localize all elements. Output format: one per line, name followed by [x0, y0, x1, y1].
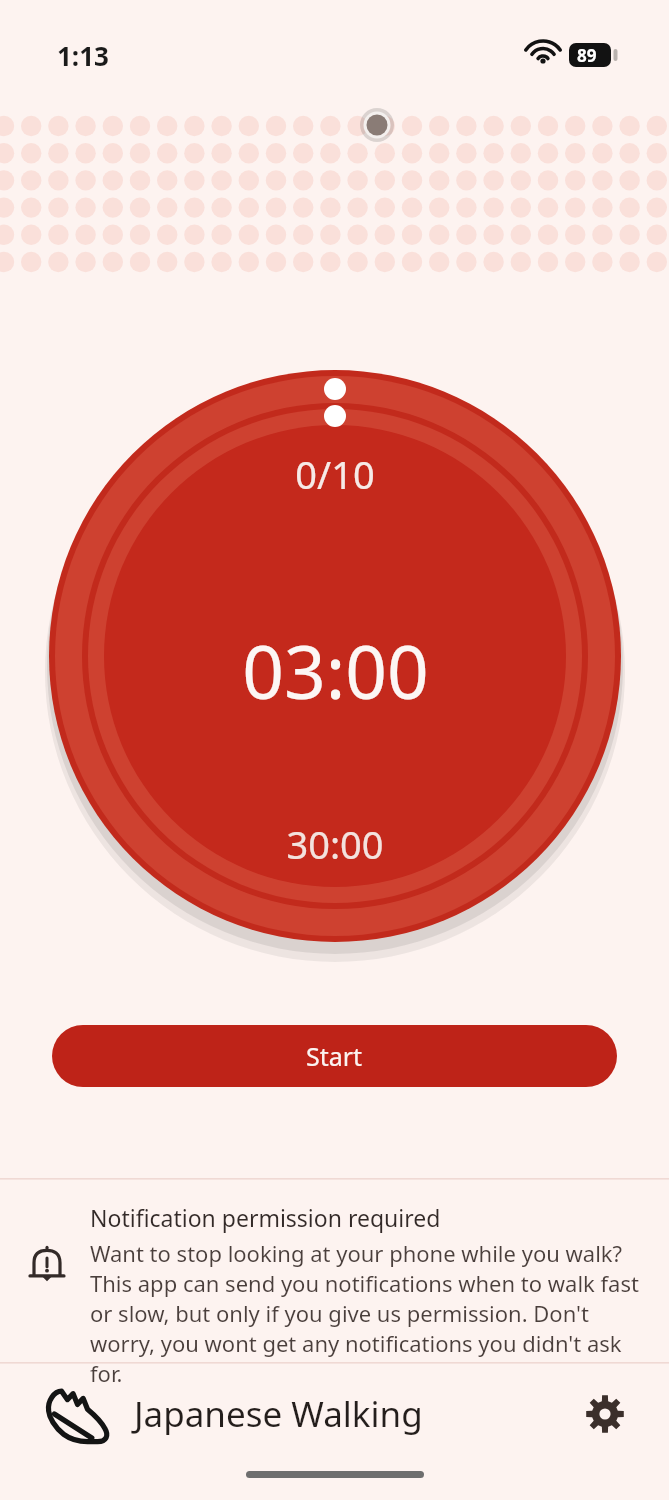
staticText: 89 [577, 44, 597, 67]
other: Japanese Walking [40, 1384, 112, 1444]
staticText: 0/10 [295, 448, 375, 500]
button[interactable]: Settings [577, 1386, 633, 1442]
staticText: Notification permission required [90, 1202, 441, 1233]
staticText: 30:00 [286, 818, 384, 870]
staticText: 1:13 [57, 38, 109, 73]
staticText: Start [306, 1039, 363, 1073]
staticText: 03:00 [242, 621, 429, 720]
staticText: Japanese Walking [134, 1390, 423, 1438]
other: Notification warning [28, 1246, 66, 1290]
button[interactable]: Notification warning [0, 1178, 669, 1364]
button[interactable]: Start [52, 1025, 617, 1087]
button[interactable]: 0/10 [45, 368, 625, 948]
staticText: Want to stop looking at your phone while… [90, 1238, 652, 1388]
